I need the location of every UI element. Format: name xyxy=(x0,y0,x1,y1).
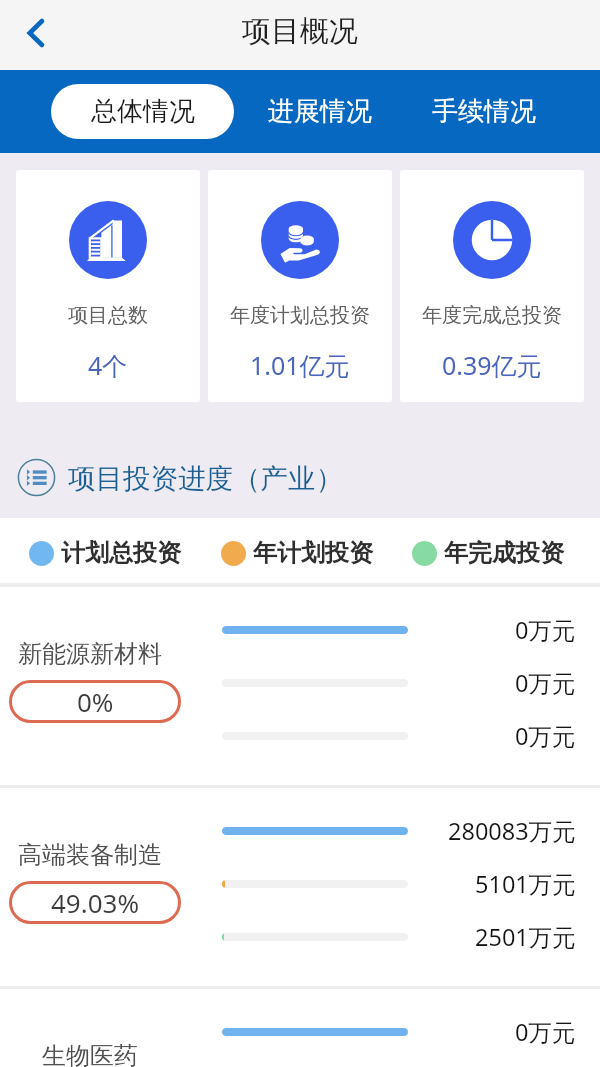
staticText: 年度计划总投资 xyxy=(230,303,370,328)
button[interactable]: 计划总投资 xyxy=(29,538,600,568)
staticText: 项目投资进度（产业） xyxy=(68,462,343,497)
staticText: 49.03% xyxy=(51,885,140,920)
staticText: 2501万元 xyxy=(475,921,576,953)
staticText: 0万元 xyxy=(515,720,576,752)
staticText: 5101万元 xyxy=(475,868,576,900)
staticText: 新能源新材料 xyxy=(18,639,162,669)
staticText: 项目总数 xyxy=(68,303,148,328)
button[interactable]: 年度完成总投资 xyxy=(400,170,584,402)
staticText: 年完成投资 xyxy=(444,538,564,568)
button[interactable]: Back xyxy=(12,9,60,57)
staticText: 高端装备制造 xyxy=(18,840,162,870)
staticText: 4个 xyxy=(88,348,128,382)
staticText: 0% xyxy=(77,684,114,719)
button[interactable]: 年度计划总投资 xyxy=(208,170,392,402)
staticText: 总体情况 xyxy=(91,95,195,128)
button[interactable]: 进展情况 xyxy=(259,84,381,139)
button[interactable]: 年完成投资 xyxy=(412,538,600,568)
staticText: 0万元 xyxy=(515,667,576,699)
button[interactable]: 项目总数 xyxy=(16,170,200,402)
staticText: 280083万元 xyxy=(448,815,576,847)
staticText: 0万元 xyxy=(515,614,576,646)
staticText: 进展情况 xyxy=(268,95,372,128)
staticText: 项目概况 xyxy=(242,13,358,50)
staticText: 手续情况 xyxy=(432,95,536,128)
staticText: 年计划投资 xyxy=(253,538,373,568)
staticText: 年度完成总投资 xyxy=(422,303,562,328)
staticText: 生物医药 xyxy=(42,1041,138,1067)
button[interactable]: 新能源新材料 xyxy=(0,587,600,785)
staticText: 0万元 xyxy=(515,1016,576,1048)
button[interactable]: 手续情况 xyxy=(423,84,545,139)
staticText: 1.01亿元 xyxy=(250,348,350,382)
button[interactable]: 年计划投资 xyxy=(221,538,600,568)
staticText: 0.39亿元 xyxy=(442,348,542,382)
button[interactable]: 生物医药 xyxy=(0,989,600,1067)
button[interactable]: 总体情况 xyxy=(51,84,234,139)
button[interactable]: 高端装备制造 xyxy=(0,788,600,986)
staticText: 计划总投资 xyxy=(61,538,181,568)
